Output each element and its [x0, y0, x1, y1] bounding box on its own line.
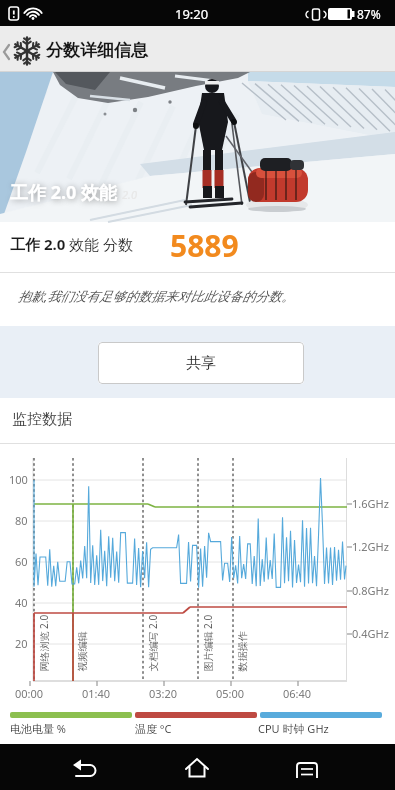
staticText: 2.0 — [122, 187, 137, 202]
button[interactable] — [0, 26, 16, 72]
staticText: 20 — [15, 636, 28, 651]
staticText: 60 — [15, 554, 28, 569]
staticText: 19:20 — [175, 5, 209, 23]
staticText: 分数详细信息 — [46, 40, 148, 61]
staticText: 06:40 — [283, 686, 312, 701]
staticText: 0.4GHz — [352, 626, 389, 641]
staticText: 视频编辑 — [75, 631, 88, 671]
staticText: 80 — [15, 513, 28, 528]
staticText: 共享 — [186, 354, 216, 373]
staticText: 0.8GHz — [352, 583, 389, 598]
staticText: 1.6GHz — [352, 496, 389, 511]
staticText: 87% — [357, 6, 381, 22]
staticText: 监控数据 — [12, 410, 72, 429]
button[interactable]: 共享 — [98, 342, 304, 384]
button[interactable] — [282, 744, 330, 790]
staticText: 1.2GHz — [352, 539, 389, 554]
staticText: 工作 2.0 效能 分数 — [10, 234, 134, 254]
staticText: 100 — [9, 472, 28, 487]
staticText: 温度 °C — [135, 721, 172, 736]
staticText: CPU 时钟 GHz — [258, 721, 329, 736]
staticText: 01:40 — [82, 686, 111, 701]
staticText: 抱歉,我们没有足够的数据来对比此设备的分数。 — [18, 287, 295, 305]
staticText: 40 — [15, 595, 28, 610]
staticText: 工作 2.0 效能 — [10, 180, 118, 205]
staticText: 文档编写 2.0 — [145, 614, 158, 671]
staticText: 网络浏览 2.0 — [36, 614, 49, 671]
staticText: 数据操作 — [235, 631, 248, 671]
staticText: 00:00 — [15, 686, 44, 701]
staticText: 05:00 — [216, 686, 245, 701]
staticText: 5889 — [170, 225, 239, 266]
button[interactable] — [173, 744, 221, 790]
button[interactable] — [64, 744, 112, 790]
staticText: 图片编辑 2.0 — [200, 614, 213, 671]
staticText: 电池电量 % — [10, 721, 67, 736]
staticText: 03:20 — [149, 686, 178, 701]
